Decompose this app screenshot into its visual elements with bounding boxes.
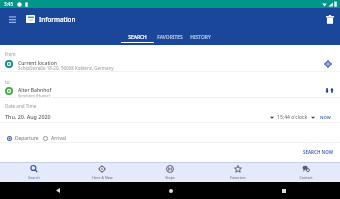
button[interactable]: Thu, 20. Aug 2020 bbox=[5, 113, 51, 120]
button[interactable]: to bbox=[0, 72, 340, 97]
button[interactable]: Search bbox=[0, 163, 68, 182]
button[interactable]: Delete bbox=[322, 11, 338, 27]
staticText: FAVORITES bbox=[157, 34, 183, 41]
staticText: HISTORY bbox=[190, 34, 211, 41]
staticText: Date and Time bbox=[5, 103, 37, 109]
staticText: Current location bbox=[18, 60, 57, 67]
staticText: from bbox=[5, 51, 16, 57]
staticText: Contact bbox=[299, 175, 313, 180]
button[interactable]: Contact bbox=[272, 163, 340, 182]
button[interactable]: Recent apps bbox=[278, 185, 289, 196]
button[interactable]: Favorites bbox=[204, 163, 272, 182]
button[interactable]: 15:44 o'clock bbox=[277, 114, 308, 121]
staticText: Here & Now bbox=[92, 175, 113, 180]
button[interactable]: Home bbox=[165, 185, 176, 196]
staticText: Schloßstraße 18-20, 56068 Koblenz, Germa… bbox=[18, 65, 114, 71]
button[interactable]: FAVORITES bbox=[154, 30, 185, 45]
staticText: SEARCH bbox=[128, 34, 147, 41]
staticText: Favorites bbox=[230, 175, 246, 180]
staticText: Alter Bahnhof bbox=[18, 87, 52, 94]
button[interactable]: SEARCH NOW bbox=[303, 149, 340, 155]
staticText: Stops bbox=[165, 175, 175, 180]
staticText: Arrival bbox=[51, 135, 66, 141]
button[interactable]: Departure bbox=[4, 134, 42, 142]
button[interactable]: Back bbox=[52, 185, 63, 196]
button[interactable]: from bbox=[0, 45, 340, 71]
button[interactable]: Use my location bbox=[321, 57, 335, 71]
button[interactable]: Arrival bbox=[40, 134, 69, 142]
staticText: Departure bbox=[15, 135, 39, 141]
staticText: Search bbox=[28, 175, 40, 180]
staticText: Simmern (Hunsr) bbox=[18, 93, 51, 97]
staticText: Information bbox=[39, 15, 76, 24]
button[interactable]: Open navigation menu bbox=[3, 10, 21, 28]
button[interactable]: HISTORY bbox=[185, 30, 216, 45]
staticText: to bbox=[5, 79, 10, 85]
button[interactable]: Stops bbox=[136, 163, 204, 182]
button[interactable]: Here & Now bbox=[68, 163, 136, 182]
button[interactable]: SEARCH bbox=[121, 30, 154, 45]
button[interactable]: NOW bbox=[320, 115, 331, 121]
button[interactable]: Swap origin and destination bbox=[322, 83, 336, 97]
staticText: 3:45 bbox=[4, 1, 14, 7]
